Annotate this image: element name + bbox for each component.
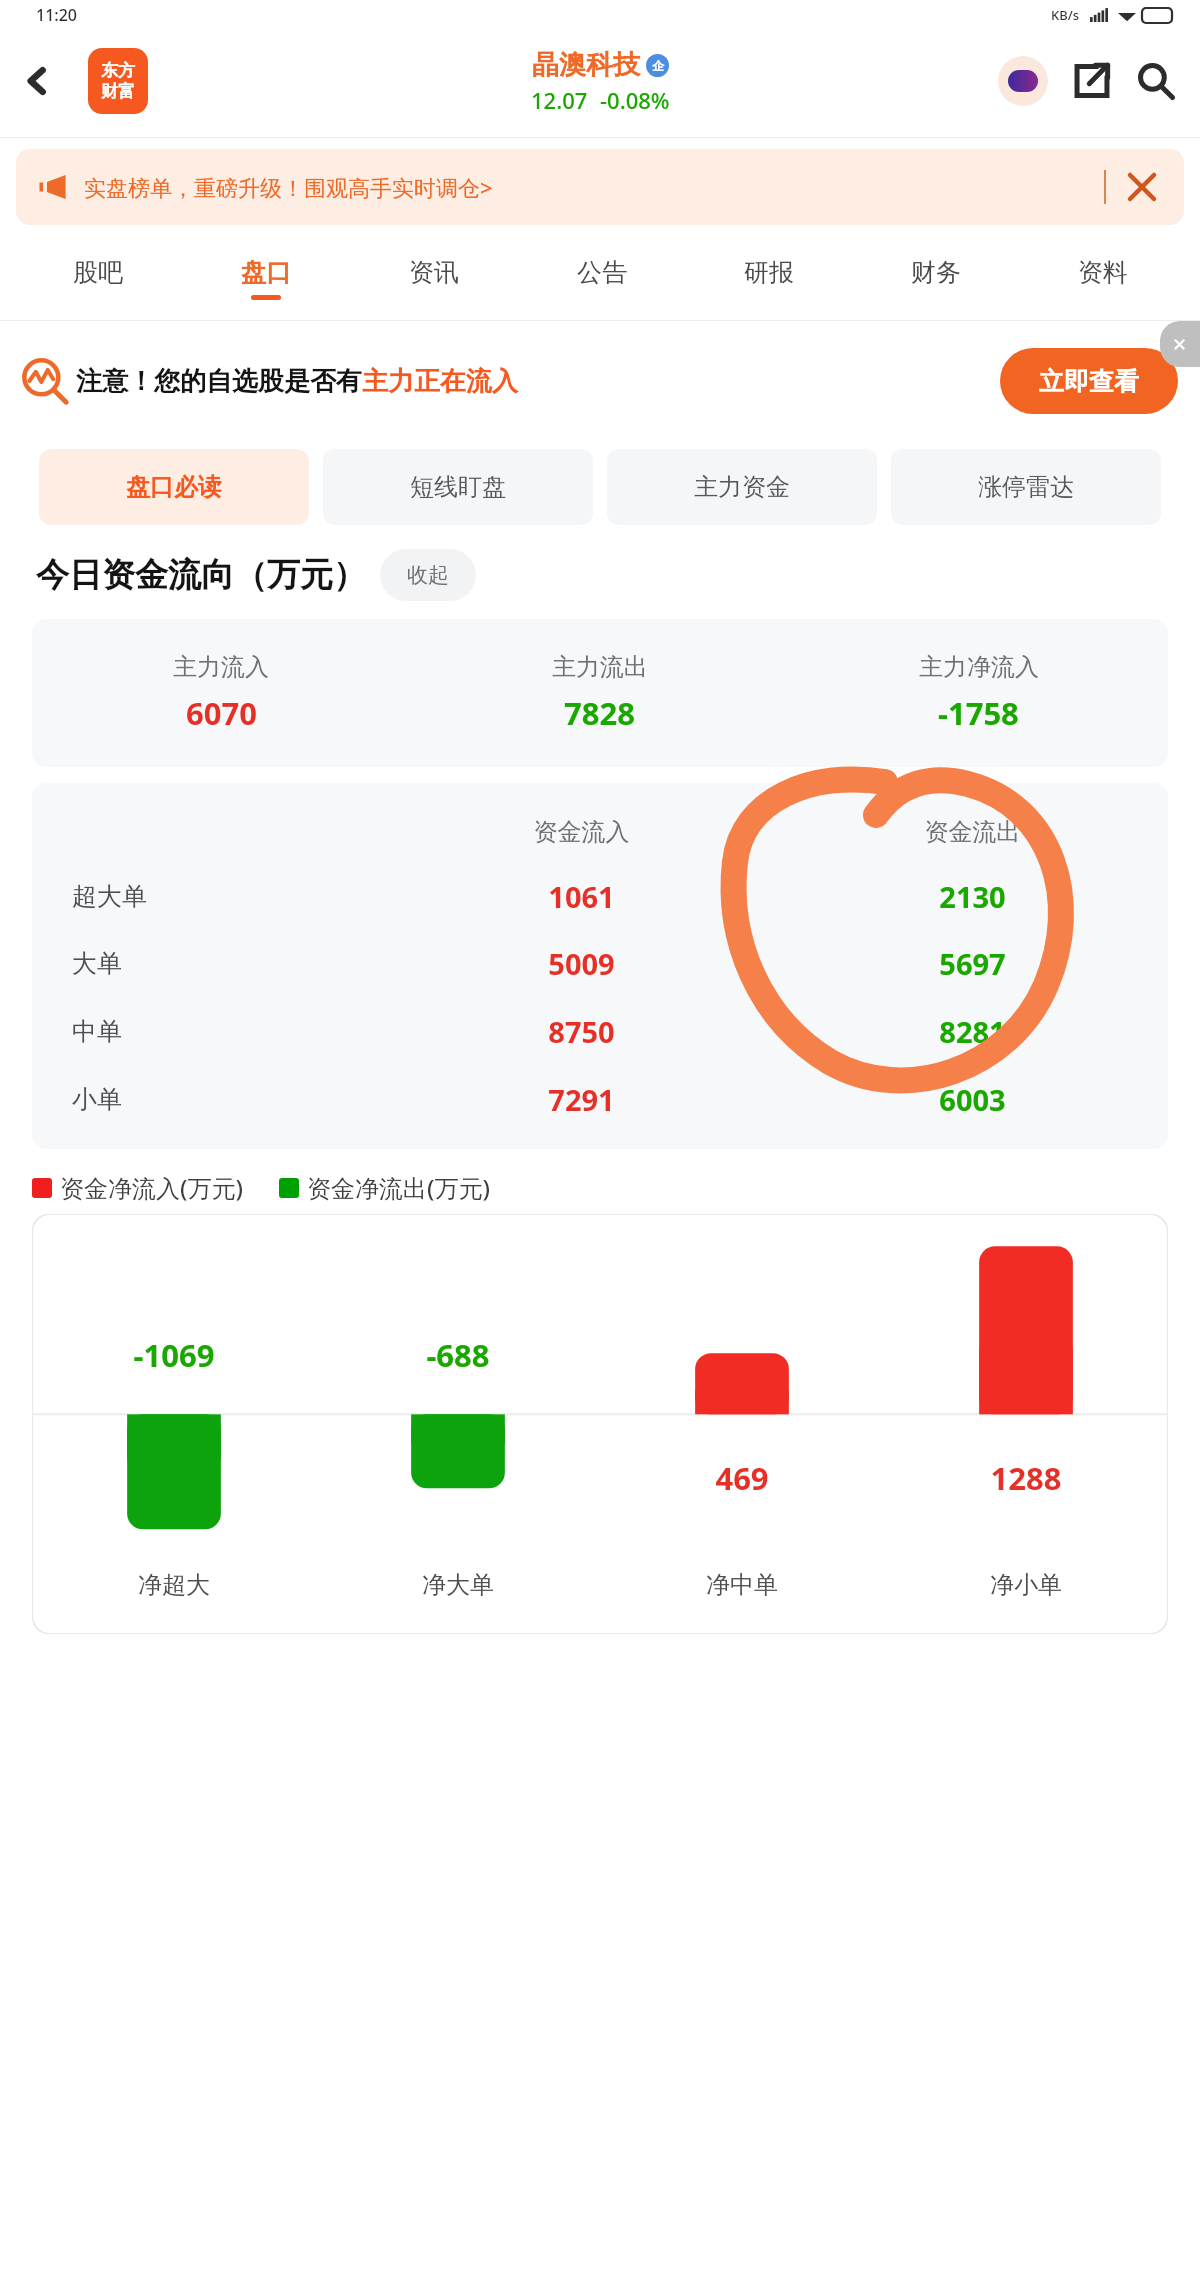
button[interactable]: Share — [1062, 51, 1122, 111]
button[interactable]: Close banner — [1122, 167, 1162, 207]
staticText: 股吧 — [73, 257, 123, 288]
staticText: 资金净流入(万元) — [60, 1171, 243, 1204]
staticText: 11:20 — [36, 4, 77, 26]
button[interactable]: 立即查看 — [1000, 348, 1178, 414]
button[interactable]: 收起 — [380, 549, 476, 601]
staticText: 2130 — [777, 877, 1168, 916]
staticText: 涨停雷达 — [978, 472, 1074, 502]
staticText: 注意！您的自选股是否有 — [76, 365, 362, 398]
staticText: 收起 — [407, 562, 449, 588]
staticText: KB/s — [1051, 6, 1080, 24]
staticText: -0.08% — [600, 85, 670, 115]
staticText: 469 — [600, 1457, 884, 1499]
staticText: 大单 — [72, 948, 386, 979]
staticText: 企 — [652, 58, 664, 73]
button[interactable]: 注意！您的自选股是否有 — [22, 348, 1178, 414]
staticText: 12.07 — [531, 85, 588, 115]
staticText: 财务 — [911, 257, 961, 288]
button[interactable]: 实盘榜单，重磅升级！围观高手实时调仓> — [16, 149, 1184, 225]
staticText: 今日资金流向（万元） — [36, 554, 366, 596]
staticText: 盘口必读 — [126, 472, 222, 502]
button[interactable]: 晶澳科技 — [531, 48, 670, 115]
button[interactable]: Search — [1126, 51, 1186, 111]
staticText: 主力净流入 — [919, 652, 1039, 682]
staticText: 资讯 — [409, 257, 459, 288]
staticText: 研报 — [744, 257, 794, 288]
button[interactable]: 盘口必读 — [39, 449, 309, 525]
staticText: 小单 — [72, 1084, 386, 1115]
button[interactable]: 资讯 — [350, 236, 518, 320]
staticText: 1288 — [884, 1457, 1168, 1499]
button[interactable]: 主力资金 — [607, 449, 877, 525]
staticText: 主力正在流入 — [362, 365, 518, 398]
staticText: 财富 — [101, 81, 135, 102]
staticText: 8750 — [386, 1012, 777, 1051]
staticText: 资料 — [1078, 257, 1128, 288]
staticText: 短线盯盘 — [410, 472, 506, 502]
staticText: ✕ — [1172, 334, 1188, 355]
staticText: 资金净流出(万元) — [307, 1171, 490, 1204]
button[interactable]: East Money home — [88, 48, 148, 114]
button[interactable]: 涨停雷达 — [891, 449, 1161, 525]
staticText: 公告 — [577, 257, 627, 288]
staticText: 主力流出 — [552, 652, 648, 682]
staticText: 7828 — [564, 692, 635, 734]
staticText: 净中单 — [600, 1570, 884, 1600]
staticText: 资金流出 — [777, 817, 1168, 847]
button[interactable]: Back — [10, 53, 66, 109]
staticText: 超大单 — [72, 881, 386, 912]
staticText: 5009 — [386, 944, 777, 983]
staticText: 中单 — [72, 1016, 386, 1047]
staticText: 东方 — [101, 60, 135, 81]
staticText: 晶澳科技 — [532, 48, 640, 82]
staticText: 盘口 — [241, 257, 291, 288]
staticText: 净大单 — [316, 1570, 600, 1600]
staticText: 6003 — [777, 1080, 1168, 1119]
staticText: -1758 — [938, 692, 1019, 734]
button[interactable]: Close ad — [1160, 321, 1200, 367]
staticText: 实盘榜单，重磅升级！围观高手实时调仓> — [84, 172, 493, 202]
button[interactable]: 财务 — [852, 236, 1019, 320]
staticText: 主力资金 — [694, 472, 790, 502]
button[interactable]: 短线盯盘 — [323, 449, 593, 525]
staticText: 7291 — [386, 1080, 777, 1119]
button[interactable]: 盘口 — [182, 236, 350, 320]
button[interactable]: 股吧 — [14, 236, 182, 320]
staticText: 5697 — [777, 944, 1168, 983]
button[interactable]: Assistant — [994, 52, 1052, 110]
staticText: 立即查看 — [1039, 366, 1139, 397]
staticText: 净小单 — [884, 1570, 1168, 1600]
staticText: 主力流入 — [173, 652, 269, 682]
staticText: -1069 — [32, 1334, 316, 1376]
button[interactable]: 资料 — [1019, 236, 1186, 320]
button[interactable]: 研报 — [685, 236, 852, 320]
staticText: 1061 — [386, 877, 777, 916]
staticText: 净超大 — [32, 1570, 316, 1600]
staticText: 6070 — [186, 692, 257, 734]
button[interactable]: 公告 — [518, 236, 685, 320]
staticText: 8281 — [777, 1012, 1168, 1051]
staticText: 资金流入 — [386, 817, 777, 847]
staticText: -688 — [316, 1334, 600, 1376]
